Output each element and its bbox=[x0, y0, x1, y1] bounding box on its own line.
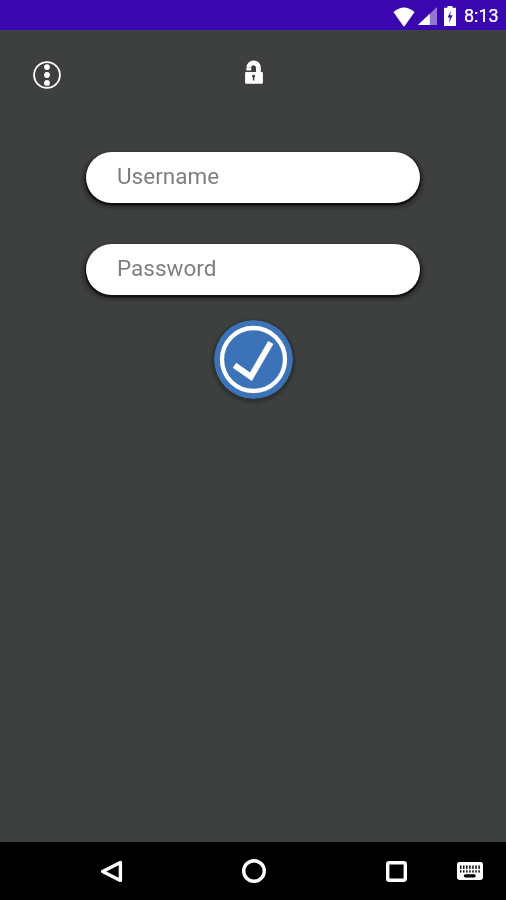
button[interactable]: Back bbox=[81, 842, 141, 900]
button[interactable]: Home bbox=[224, 842, 284, 900]
button[interactable]: Unlocked bbox=[241, 56, 267, 88]
button[interactable]: Password bbox=[86, 244, 420, 295]
button[interactable]: Username bbox=[86, 152, 420, 203]
button[interactable]: Keyboard bbox=[444, 845, 496, 897]
button[interactable]: Recents bbox=[366, 842, 426, 900]
staticText: Username bbox=[117, 163, 220, 189]
staticText: Password bbox=[117, 255, 217, 281]
staticText: 8:13 bbox=[464, 5, 499, 26]
button[interactable]: Sign in bbox=[214, 320, 293, 399]
button[interactable]: More options bbox=[27, 55, 67, 95]
